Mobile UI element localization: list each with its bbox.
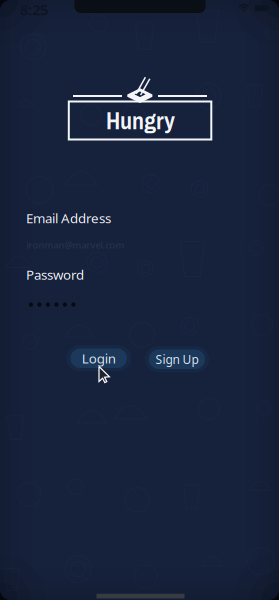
staticText: Password <box>26 266 84 283</box>
staticText: 8:25 <box>20 0 48 19</box>
staticText: Login <box>82 349 116 367</box>
button[interactable]: Sign Up <box>149 349 205 369</box>
button[interactable]: ironman@marvel.com <box>0 235 279 255</box>
staticText: Sign Up <box>155 351 198 367</box>
button[interactable]: Login <box>70 348 127 368</box>
staticText: ironman@marvel.com <box>26 239 124 251</box>
button[interactable] <box>0 295 279 315</box>
staticText: Hungry <box>106 104 175 137</box>
staticText: Email Address <box>26 209 111 227</box>
